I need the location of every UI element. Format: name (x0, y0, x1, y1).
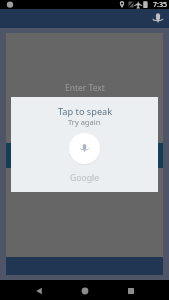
staticText: Tap to speak (58, 105, 113, 118)
button[interactable]: Recent apps (117, 280, 145, 300)
staticText: Try again (68, 117, 101, 127)
button[interactable]: Voice search (150, 9, 169, 28)
staticText: Google (70, 172, 100, 184)
staticText: Enter Text (65, 82, 105, 94)
staticText: 7:35 (153, 0, 167, 9)
button[interactable]: Home (71, 280, 99, 300)
button[interactable]: Back (25, 280, 53, 300)
button[interactable]: Tap to speak (69, 133, 100, 164)
